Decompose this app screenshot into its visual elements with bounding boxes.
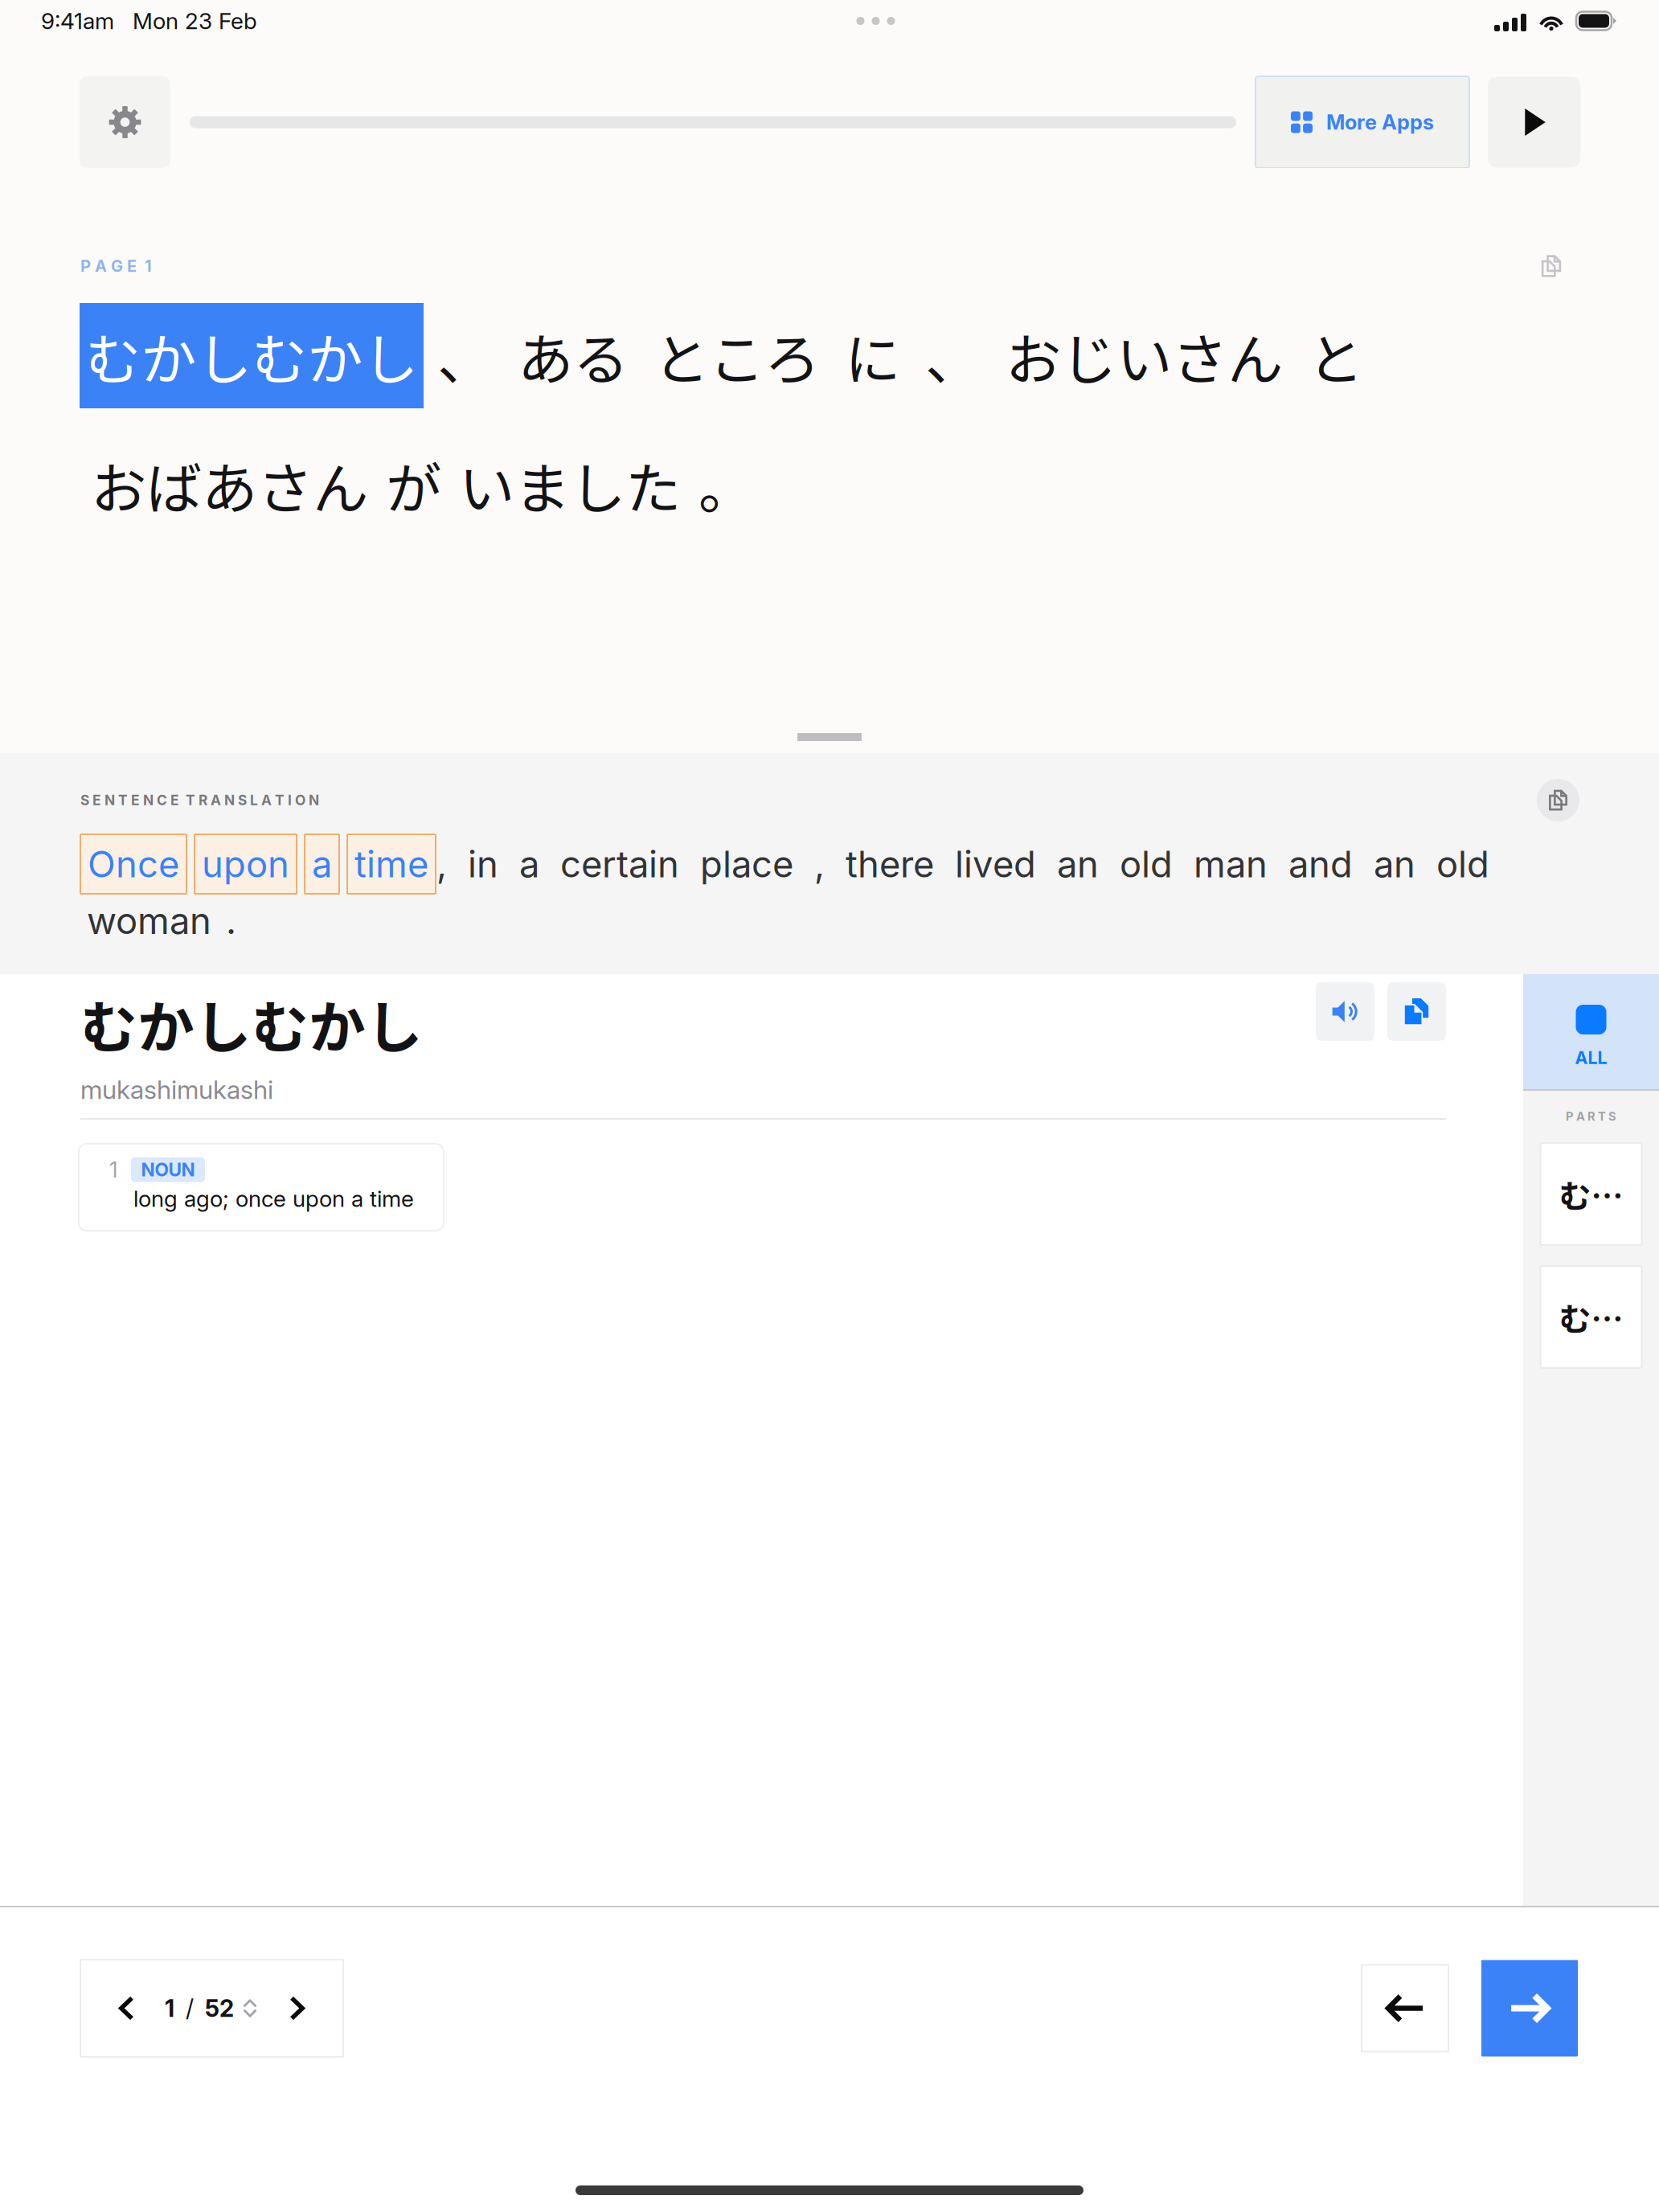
staticText: に xyxy=(845,315,900,396)
staticText: , xyxy=(436,842,447,886)
button[interactable]: Previous word xyxy=(1362,1965,1448,2052)
staticText: が xyxy=(386,444,441,525)
button[interactable]: む… xyxy=(1540,1143,1642,1245)
staticText: and xyxy=(1288,842,1353,886)
staticText: む… xyxy=(1559,1294,1623,1340)
staticText: an xyxy=(1057,842,1099,886)
button[interactable]: Copy translation xyxy=(1537,779,1579,821)
button[interactable]: Settings xyxy=(80,76,170,168)
staticText: a xyxy=(519,842,539,886)
staticText: a xyxy=(312,842,332,886)
staticText: むかしむかし xyxy=(85,315,418,396)
staticText: woman xyxy=(87,899,211,943)
staticText: Once xyxy=(88,842,179,886)
button[interactable]: Next word xyxy=(1481,1960,1578,2056)
staticText: 9:41am xyxy=(41,7,114,35)
button[interactable]: Copy word xyxy=(1387,982,1446,1041)
staticText: む… xyxy=(1559,1171,1623,1217)
button[interactable]: ALL xyxy=(1523,974,1659,1089)
staticText: Mon 23 Feb xyxy=(133,7,257,35)
staticText: NOUN xyxy=(141,1159,195,1181)
button[interactable]: Play xyxy=(1488,77,1580,168)
staticText: an xyxy=(1374,842,1415,886)
staticText: S E N T E N C E T R A N S L A T I O N xyxy=(80,792,319,809)
staticText: ところ xyxy=(653,315,820,396)
staticText: lived xyxy=(955,842,1036,886)
button[interactable]: More Apps xyxy=(1256,76,1469,168)
staticText: mukashimukashi xyxy=(80,1074,273,1105)
staticText: むかしむかし xyxy=(80,982,423,1064)
staticText: 、 xyxy=(925,315,981,396)
button[interactable]: む… xyxy=(1540,1266,1642,1368)
staticText: と xyxy=(1308,315,1363,396)
staticText: time xyxy=(354,842,428,886)
staticText: おばあさん xyxy=(91,444,368,525)
staticText: man xyxy=(1194,842,1268,886)
staticText: 。 xyxy=(698,444,754,525)
staticText: 、 xyxy=(437,315,493,396)
button[interactable]: Previous page xyxy=(104,1980,150,2036)
staticText: old xyxy=(1120,842,1173,886)
staticText: old xyxy=(1436,842,1489,886)
staticText: 1 xyxy=(165,1994,174,2023)
button[interactable]: Next page xyxy=(273,1980,320,2036)
staticText: there xyxy=(846,842,934,886)
staticText: long ago; once upon a time xyxy=(133,1185,414,1212)
staticText: ALL xyxy=(1575,1047,1607,1068)
staticText: upon xyxy=(202,842,289,886)
staticText: certain xyxy=(560,842,679,886)
staticText: , xyxy=(814,842,825,886)
button[interactable]: Play pronunciation xyxy=(1316,982,1374,1041)
staticText: place xyxy=(700,842,793,886)
staticText: . xyxy=(226,899,236,943)
button[interactable]: Copy sentence xyxy=(1529,244,1574,289)
staticText: 1 xyxy=(109,1157,117,1183)
staticText: in xyxy=(468,842,498,886)
staticText: P A R T S xyxy=(1566,1109,1616,1124)
staticText: P A G E 1 xyxy=(80,256,152,276)
staticText: / xyxy=(186,1994,194,2023)
staticText: More Apps xyxy=(1326,110,1434,135)
staticText: いました xyxy=(459,444,681,525)
staticText: おじいさん xyxy=(1006,315,1283,396)
staticText: 52 xyxy=(205,1994,234,2023)
staticText: ある xyxy=(518,315,629,396)
